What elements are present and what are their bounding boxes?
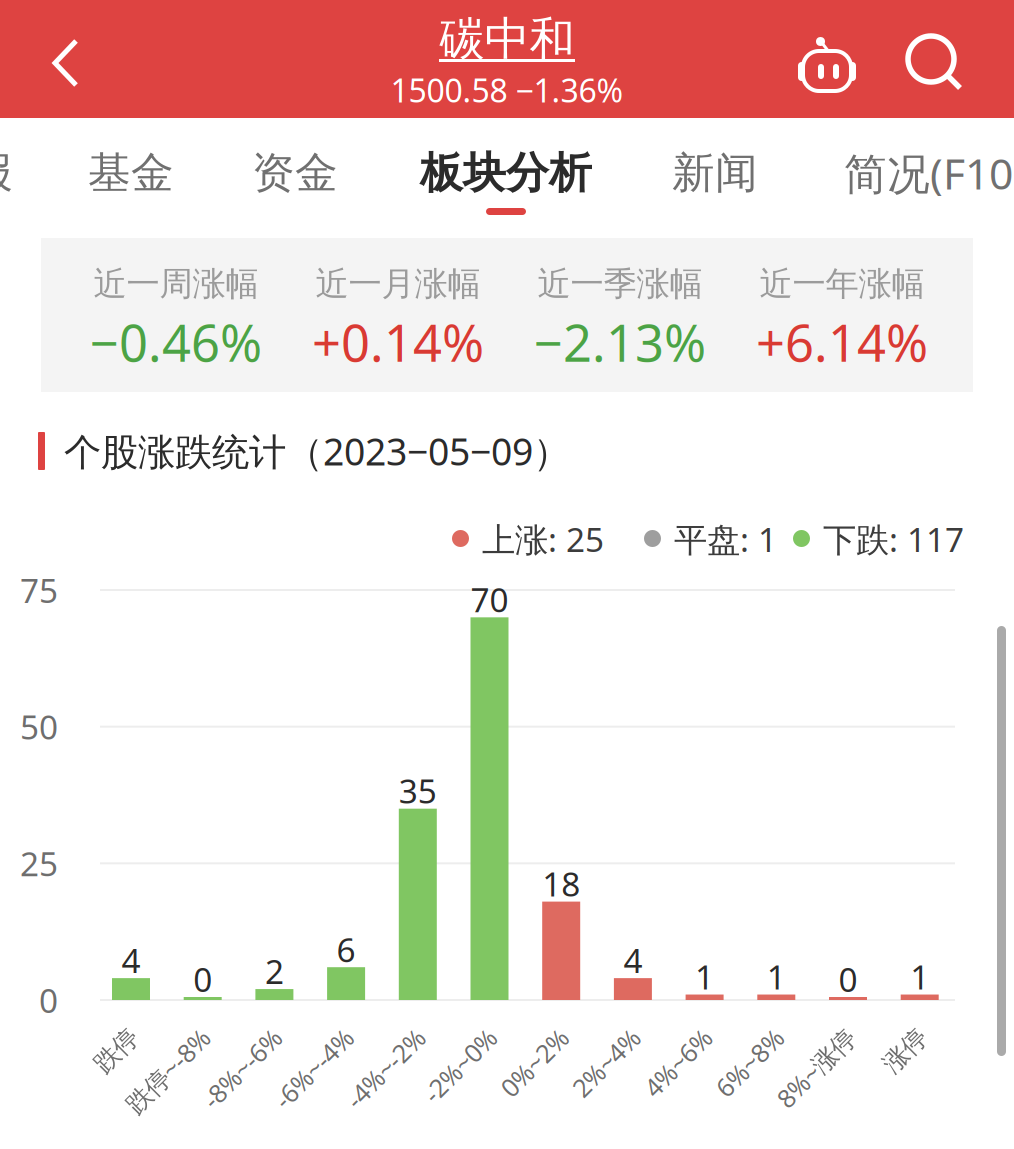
button[interactable]: Back <box>0 0 110 118</box>
button[interactable]: 快报 <box>0 118 45 224</box>
staticText: 基金 <box>88 147 174 199</box>
staticText: 50 <box>20 704 58 749</box>
staticText: 35 <box>399 768 437 813</box>
staticText: 快报 <box>0 147 13 199</box>
staticText: 近一周涨幅 <box>93 263 258 304</box>
staticText: 70 <box>470 577 508 621</box>
staticText: 0 <box>39 978 58 1022</box>
staticText: 跌停~-8% <box>99 1016 206 1050</box>
staticText: 0 <box>838 957 857 1001</box>
button[interactable]: 基金 <box>56 118 206 224</box>
staticText: 上涨: 25 <box>482 517 604 561</box>
staticText: 资金 <box>252 147 338 199</box>
staticText: 板块分析 <box>420 147 592 199</box>
button[interactable]: 新闻 <box>640 118 790 224</box>
staticText: 8%~涨停 <box>752 1016 851 1050</box>
staticText: 跌停 <box>84 1017 134 1048</box>
staticText: −0.46% <box>90 308 262 376</box>
button[interactable]: 板块分析 <box>396 118 616 224</box>
staticText: 0 <box>193 957 212 1001</box>
staticText: 6 <box>337 927 356 971</box>
staticText: 涨停 <box>873 1017 923 1048</box>
staticText: 个股涨跌统计（2023−05−09） <box>64 426 570 476</box>
staticText: -6%~-4% <box>249 1016 349 1050</box>
staticText: 75 <box>20 568 58 612</box>
staticText: 平盘: 1 <box>674 517 777 561</box>
staticText: 4 <box>623 938 642 982</box>
button[interactable]: AI assistant <box>779 0 875 118</box>
staticText: 下跌: 117 <box>823 517 964 561</box>
staticText: -4%~-2% <box>321 1016 421 1050</box>
staticText: 碳中和 <box>439 11 574 67</box>
staticText: 4%~6% <box>624 1016 708 1050</box>
staticText: 0%~2% <box>480 1016 564 1050</box>
staticText: 2%~4% <box>552 1016 636 1050</box>
staticText: 1 <box>695 954 714 999</box>
button[interactable]: 资金 <box>220 118 370 224</box>
staticText: 近一月涨幅 <box>315 263 480 304</box>
staticText: 18 <box>542 861 580 906</box>
staticText: 近一季涨幅 <box>537 263 702 304</box>
staticText: 1 <box>910 954 929 999</box>
staticText: -8%~-6% <box>177 1016 277 1050</box>
staticText: 简况(F10) <box>844 145 1014 201</box>
staticText: −2.13% <box>534 308 706 376</box>
staticText: 6%~8% <box>695 1016 779 1050</box>
staticText: 4 <box>121 938 140 982</box>
staticText: +0.14% <box>312 308 484 376</box>
staticText: 近一年涨幅 <box>759 263 924 304</box>
staticText: 新闻 <box>672 147 758 199</box>
staticText: 1500.58 −1.36% <box>390 69 623 111</box>
staticText: +6.14% <box>756 308 928 376</box>
button[interactable]: 简况(F10) <box>815 118 1014 224</box>
button[interactable]: Search <box>885 0 979 118</box>
staticText: 2 <box>265 949 284 993</box>
staticText: 25 <box>20 841 58 885</box>
staticText: 1 <box>767 954 786 999</box>
staticText: -2%~0% <box>400 1016 492 1050</box>
